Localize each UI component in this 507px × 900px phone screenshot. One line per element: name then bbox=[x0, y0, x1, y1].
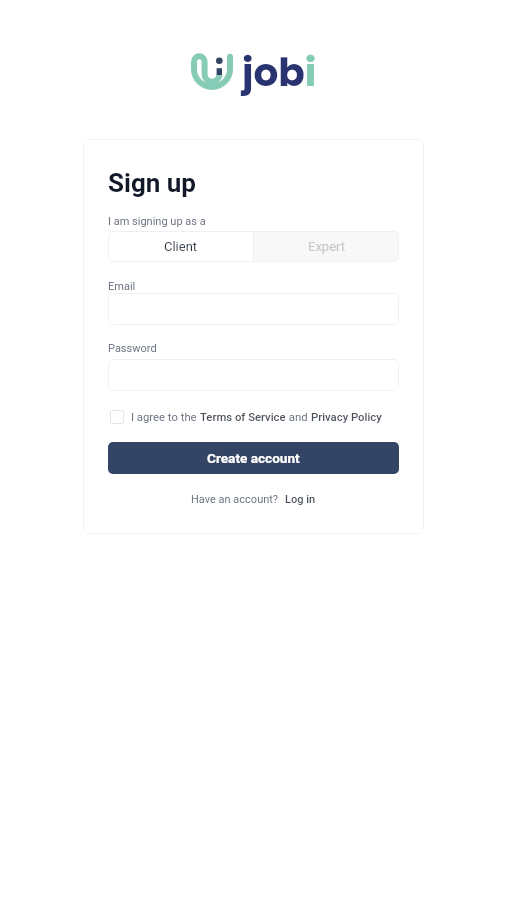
button[interactable]: Expert bbox=[254, 231, 399, 262]
staticText: Client bbox=[164, 239, 198, 254]
staticText: Create account bbox=[207, 450, 300, 466]
staticText: Email bbox=[108, 280, 136, 293]
button[interactable]: Client bbox=[108, 231, 253, 262]
staticText: Log in bbox=[285, 493, 316, 506]
button[interactable] bbox=[108, 293, 399, 325]
staticText: and bbox=[286, 411, 311, 424]
staticText: Password bbox=[108, 342, 157, 355]
button[interactable] bbox=[108, 359, 399, 391]
button[interactable]: Create account bbox=[108, 442, 399, 474]
staticText: Terms of Service bbox=[200, 411, 286, 424]
button[interactable]: I agree to the bbox=[108, 410, 382, 424]
staticText: jobi bbox=[242, 45, 317, 100]
staticText: Have an account? bbox=[191, 493, 279, 506]
button[interactable]: Log in bbox=[285, 493, 316, 506]
staticText: I am signing up as a bbox=[108, 215, 206, 228]
staticText: Expert bbox=[308, 239, 346, 254]
staticText: Sign up bbox=[108, 168, 196, 198]
staticText: I agree to the bbox=[131, 411, 200, 424]
staticText: Privacy Policy bbox=[311, 411, 382, 424]
